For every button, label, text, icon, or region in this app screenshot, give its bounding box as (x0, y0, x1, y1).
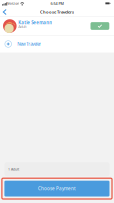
staticText: Choose Payment (38, 185, 76, 192)
staticText: Adult (18, 24, 26, 29)
staticText: 6:54 PM (50, 1, 63, 6)
staticText: Choose Travelers (40, 9, 74, 15)
staticText: Verizon (7, 1, 19, 6)
staticText: 1 Adult (8, 167, 19, 171)
button[interactable]: Back (0, 7, 11, 17)
button[interactable]: New Traveler (0, 35, 114, 52)
button[interactable]: Choose Payment (2, 178, 112, 199)
button[interactable]: Katie Seemann (0, 17, 114, 35)
staticText: Katie Seemann (18, 20, 52, 26)
staticText: New Traveler (17, 41, 41, 47)
